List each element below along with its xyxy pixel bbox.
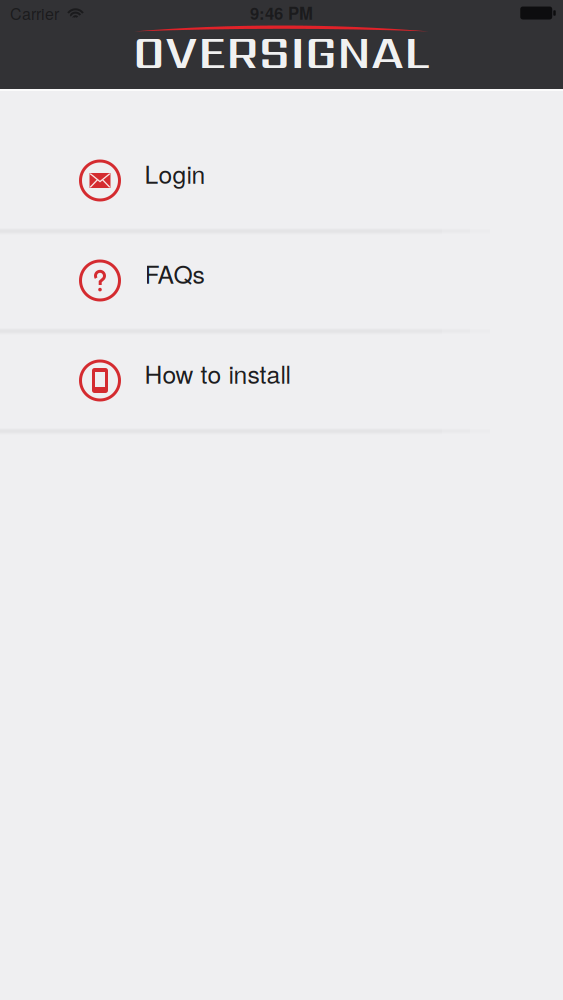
button[interactable]: How to install	[0, 334, 563, 434]
staticText: 9:46 PM	[250, 1, 313, 25]
button[interactable]: FAQs	[0, 234, 563, 334]
staticText: FAQs	[144, 255, 204, 291]
staticText: How to install	[144, 355, 290, 391]
staticText: Login	[144, 155, 205, 191]
button[interactable]: Login	[0, 134, 563, 234]
staticText: OVERSIGNAL	[133, 19, 430, 84]
staticText: Carrier	[10, 1, 59, 24]
